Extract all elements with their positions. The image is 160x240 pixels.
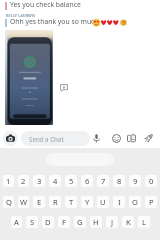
staticText: S — [30, 217, 35, 227]
button[interactable]: Y — [81, 196, 93, 208]
staticText: 2 — [21, 176, 26, 186]
button[interactable]: F — [58, 216, 70, 228]
staticText: A — [14, 217, 19, 227]
staticText: 9 — [133, 176, 138, 186]
staticText: 6 — [85, 176, 90, 186]
staticText: 4 — [53, 176, 58, 186]
button[interactable]: J — [106, 216, 118, 228]
staticText: Ohh yes thank you so much — [10, 17, 99, 26]
button[interactable]: 6 — [81, 175, 93, 187]
button[interactable]: Voice message — [89, 131, 104, 146]
button[interactable]: Emoji — [109, 131, 124, 146]
button[interactable]: D — [42, 216, 54, 228]
staticText: L — [142, 217, 146, 227]
button[interactable]: 0 — [145, 175, 157, 187]
staticText: Q — [6, 197, 12, 207]
staticText: I — [118, 197, 121, 207]
button[interactable]: 4 — [49, 175, 61, 187]
staticText: K — [126, 217, 131, 227]
button[interactable]: 8 — [113, 175, 125, 187]
button[interactable]: Photo message — [5, 30, 53, 125]
staticText: 3 — [37, 176, 42, 186]
staticText: Send a Chat — [29, 135, 64, 143]
staticText: U — [100, 197, 106, 207]
button[interactable]: S — [26, 216, 38, 228]
staticText: Yes you check balance — [10, 0, 81, 9]
staticText: T — [69, 197, 74, 207]
button[interactable]: 9 — [129, 175, 141, 187]
button[interactable]: Camera — [3, 131, 18, 146]
button[interactable]: Send — [141, 131, 156, 146]
button[interactable]: 3 — [33, 175, 45, 187]
staticText: O — [132, 197, 138, 207]
staticText: H — [93, 217, 99, 227]
button[interactable]: P — [145, 196, 157, 208]
button[interactable]: T — [65, 196, 77, 208]
button[interactable]: 7 — [97, 175, 109, 187]
button[interactable]: Send a Chat — [21, 131, 90, 146]
button[interactable]: I — [113, 196, 125, 208]
button[interactable]: K — [122, 216, 134, 228]
staticText: D — [45, 217, 51, 227]
staticText: P — [149, 197, 154, 207]
staticText: G — [77, 217, 83, 227]
staticText: KELLY LAURWN — [6, 13, 35, 18]
staticText: F — [62, 217, 66, 227]
staticText: 8 — [117, 176, 122, 186]
staticText: W — [20, 197, 28, 207]
staticText: 5 — [69, 176, 74, 186]
button[interactable]: G — [74, 216, 86, 228]
staticText: Y — [85, 197, 90, 207]
staticText: 7 — [101, 176, 106, 186]
button[interactable]: 1 — [3, 175, 14, 187]
staticText: R — [53, 197, 58, 207]
button[interactable]: U — [97, 196, 109, 208]
button[interactable]: O — [129, 196, 141, 208]
button[interactable]: H — [90, 216, 102, 228]
button[interactable]: R — [49, 196, 61, 208]
staticText: E — [37, 197, 42, 207]
button[interactable]: A — [11, 216, 22, 228]
button[interactable]: Save to camera roll — [58, 82, 70, 94]
button[interactable]: W — [18, 196, 29, 208]
button[interactable]: 2 — [18, 175, 29, 187]
staticText: 1 — [6, 176, 11, 186]
button[interactable]: Q — [3, 196, 14, 208]
staticText: J — [111, 217, 114, 227]
button[interactable]: Stickers — [124, 131, 139, 146]
staticText: 0 — [149, 176, 154, 186]
button[interactable]: 5 — [65, 175, 77, 187]
button[interactable]: L — [138, 216, 150, 228]
button[interactable]: E — [33, 196, 45, 208]
